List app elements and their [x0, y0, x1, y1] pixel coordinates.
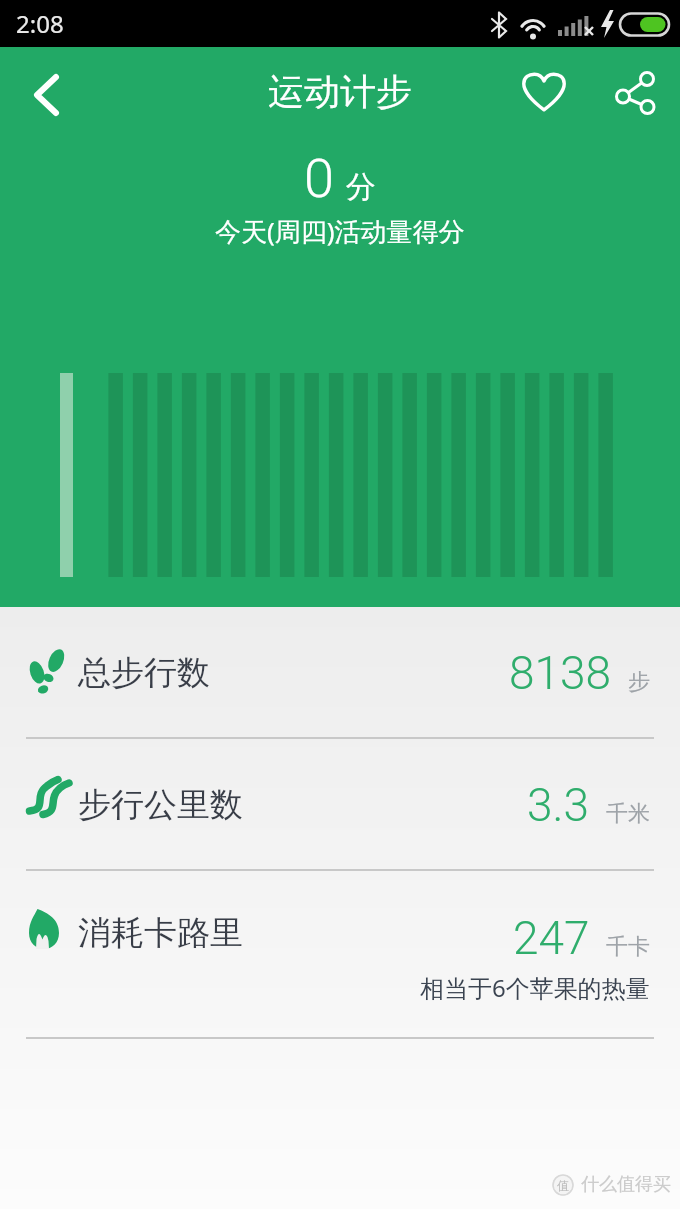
staticText: 今天(周四)活动量得分: [215, 213, 465, 249]
button[interactable]: [512, 62, 576, 124]
staticText: 什么值得买: [581, 1173, 671, 1196]
staticText: 运动计步: [268, 69, 412, 114]
button[interactable]: 总步行数: [0, 607, 680, 739]
staticText: 步行公里数: [78, 784, 243, 826]
button[interactable]: [605, 62, 667, 124]
staticText: 千米: [606, 800, 650, 828]
staticText: 相当于6个苹果的热量: [420, 971, 650, 1004]
staticText: 消耗卡路里: [78, 912, 243, 954]
staticText: 千卡: [606, 933, 650, 961]
staticText: 0: [304, 147, 334, 210]
staticText: 总步行数: [78, 652, 210, 694]
button[interactable]: [20, 59, 72, 131]
staticText: 247: [513, 911, 590, 965]
staticText: 值: [557, 1178, 569, 1193]
staticText: 8138: [509, 646, 612, 700]
staticText: 3.3: [527, 778, 590, 832]
staticText: 2:08: [16, 7, 64, 40]
button[interactable]: 步行公里数: [0, 739, 680, 871]
staticText: 分: [346, 168, 376, 206]
button[interactable]: 消耗卡路里: [0, 871, 680, 1037]
staticText: 步: [628, 668, 650, 696]
